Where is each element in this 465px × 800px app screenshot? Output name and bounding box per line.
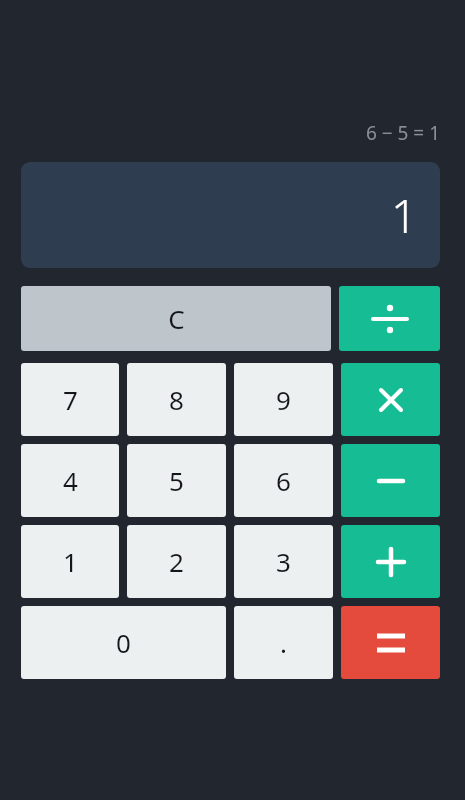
staticText: 1 (391, 184, 418, 247)
button[interactable]: Equals (341, 606, 440, 679)
button[interactable]: Subtract (341, 444, 440, 517)
button[interactable]: 2 (127, 525, 226, 598)
staticText: 9 (276, 382, 291, 417)
staticText: 0 (116, 625, 131, 660)
staticText: 6 (276, 463, 291, 498)
staticText: 5 (169, 463, 184, 498)
staticText: 3 (276, 544, 291, 579)
button[interactable]: 0 (21, 606, 226, 679)
staticText: 8 (169, 382, 184, 417)
staticText: 6 − 5 = 1 (21, 120, 440, 146)
button[interactable]: 9 (234, 363, 333, 436)
button[interactable]: 3 (234, 525, 333, 598)
button[interactable]: . (234, 606, 333, 679)
staticText: 7 (63, 382, 78, 417)
button[interactable]: Divide (339, 286, 440, 351)
staticText: 2 (169, 544, 184, 579)
staticText: C (168, 301, 185, 336)
staticText: 4 (63, 463, 78, 498)
button[interactable]: 7 (21, 363, 119, 436)
button[interactable]: 8 (127, 363, 226, 436)
button[interactable]: Add (341, 525, 440, 598)
button[interactable]: Multiply (341, 363, 440, 436)
button[interactable]: C (21, 286, 331, 351)
staticText: . (280, 625, 287, 660)
button[interactable]: 1 (21, 525, 119, 598)
button[interactable]: 4 (21, 444, 119, 517)
button[interactable]: 6 (234, 444, 333, 517)
staticText: 1 (63, 544, 78, 579)
button[interactable]: 5 (127, 444, 226, 517)
